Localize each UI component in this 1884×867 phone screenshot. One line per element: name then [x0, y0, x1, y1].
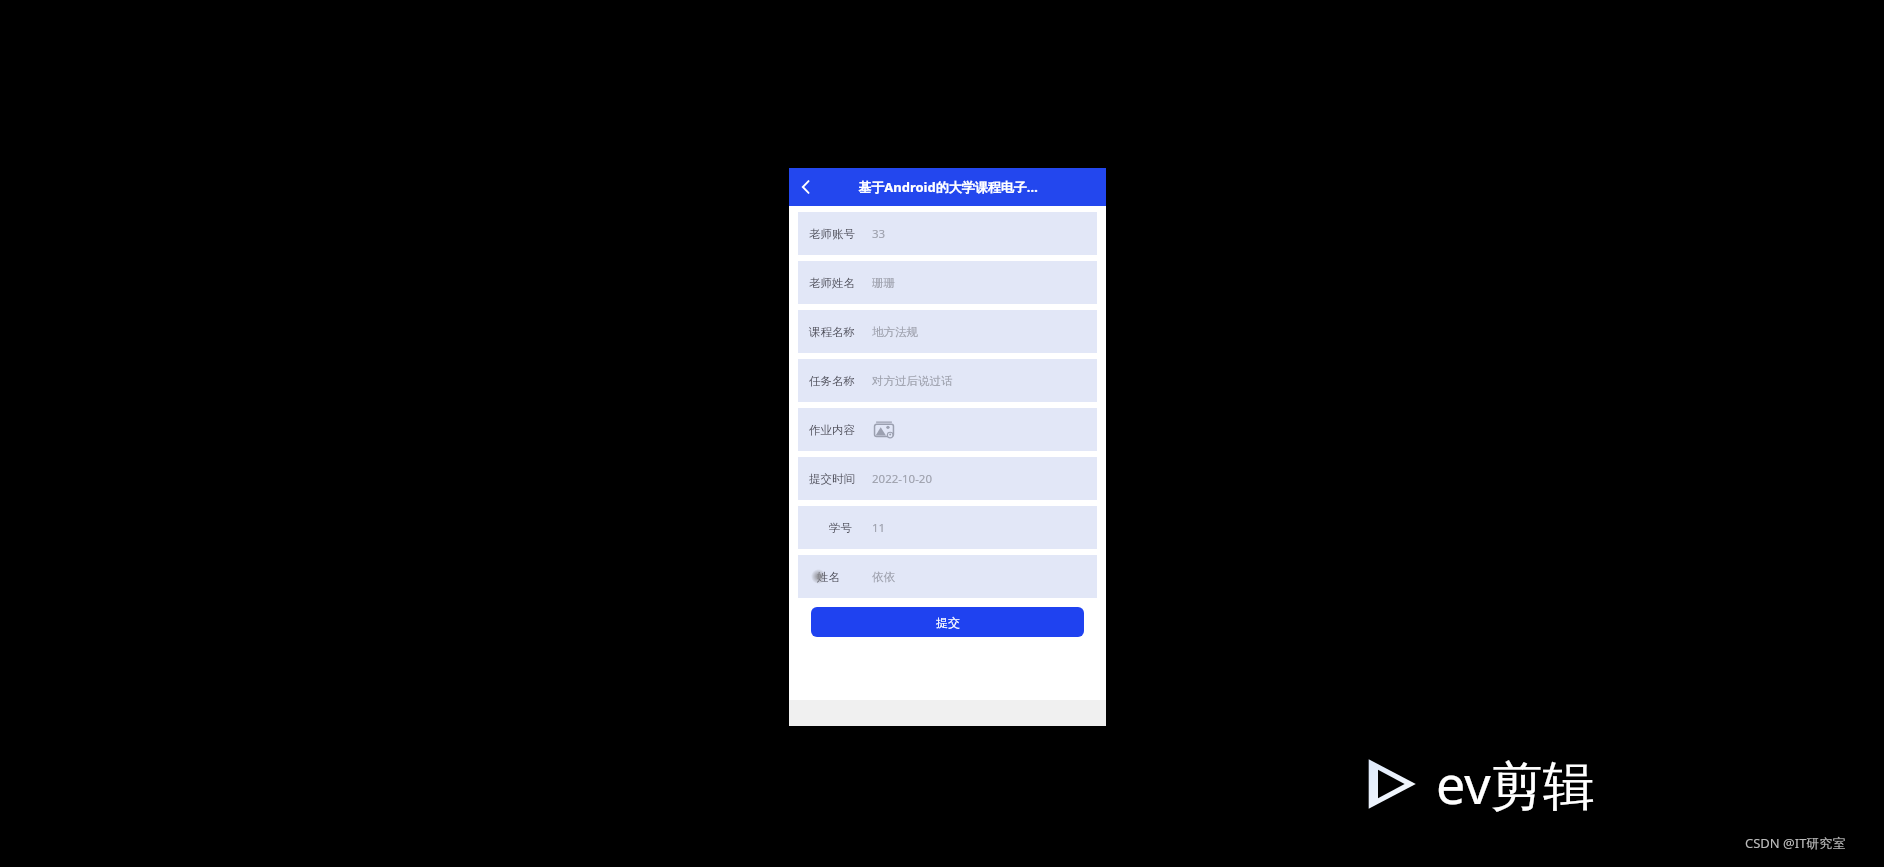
button[interactable]: 老师账号 — [798, 212, 1097, 255]
staticText: 11 — [872, 520, 886, 536]
staticText: 地方法规 — [872, 325, 918, 339]
staticText: 老师姓名 — [809, 276, 855, 290]
staticText: 姓名 — [817, 570, 840, 584]
staticText: 33 — [872, 226, 886, 242]
button[interactable]: 提交时间 — [798, 457, 1097, 500]
staticText: CSDN @IT研究室 — [1745, 834, 1846, 852]
button[interactable]: 提交 — [811, 607, 1084, 637]
staticText: 提交时间 — [809, 472, 855, 486]
staticText: 课程名称 — [809, 325, 855, 339]
button[interactable]: Back — [789, 170, 823, 204]
staticText: 作业内容 — [809, 423, 855, 437]
button[interactable]: 老师姓名 — [798, 261, 1097, 304]
button[interactable]: 课程名称 — [798, 310, 1097, 353]
staticText: 基于Android的大学课程电子… — [858, 178, 1038, 196]
staticText: 学号 — [829, 521, 852, 535]
staticText: 任务名称 — [809, 374, 855, 388]
staticText: 老师账号 — [809, 227, 855, 241]
button[interactable]: Homework image — [872, 418, 896, 442]
staticText: 珊珊 — [872, 276, 895, 290]
staticText: 对方过后说过话 — [872, 374, 953, 388]
button[interactable]: 任务名称 — [798, 359, 1097, 402]
staticText: 2022-10-20 — [872, 471, 933, 487]
button[interactable]: 学号 — [798, 506, 1097, 549]
staticText: ev剪辑 — [1436, 748, 1595, 819]
staticText: 提交 — [936, 615, 960, 630]
staticText: 依依 — [872, 570, 895, 584]
button[interactable]: 姓名 — [798, 555, 1097, 598]
button[interactable]: 作业内容 — [798, 408, 1097, 451]
